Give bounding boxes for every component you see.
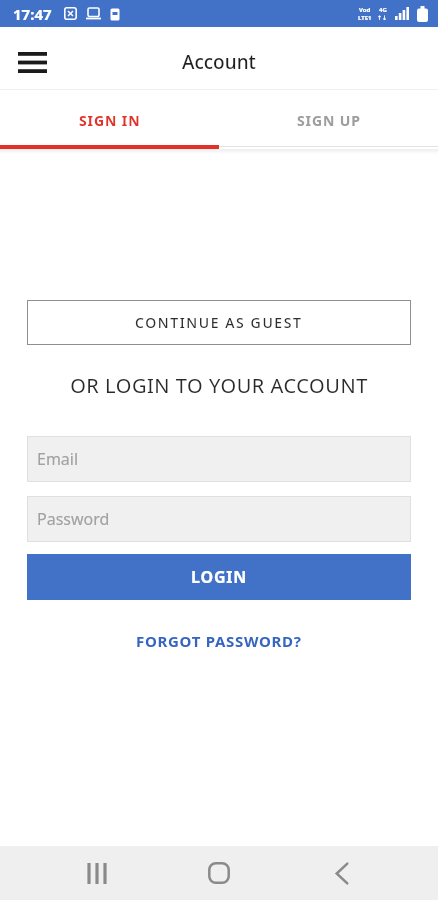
button[interactable] bbox=[9, 39, 55, 85]
button[interactable] bbox=[302, 846, 382, 900]
staticText: SIGN IN bbox=[79, 111, 141, 130]
button[interactable]: Email bbox=[27, 436, 411, 482]
staticText: Email bbox=[37, 448, 79, 470]
staticText: CONTINUE AS GUEST bbox=[135, 313, 303, 332]
staticText: Password bbox=[37, 508, 110, 530]
button[interactable]: CONTINUE AS GUEST bbox=[27, 300, 411, 345]
button[interactable]: LOGIN bbox=[27, 554, 411, 600]
staticText: SIGN UP bbox=[297, 111, 361, 130]
button[interactable] bbox=[179, 846, 259, 900]
staticText: LOGIN bbox=[191, 566, 248, 588]
button[interactable] bbox=[57, 846, 137, 900]
staticText: ↑↓ bbox=[377, 14, 388, 21]
button[interactable]: Password bbox=[27, 496, 411, 542]
button[interactable]: FORGOT PASSWORD? bbox=[128, 623, 310, 659]
staticText: OR LOGIN TO YOUR ACCOUNT bbox=[0, 372, 438, 399]
staticText: Vod bbox=[359, 6, 371, 14]
staticText: Account bbox=[182, 49, 256, 75]
button[interactable]: SIGN UP bbox=[219, 90, 438, 145]
staticText: FORGOT PASSWORD? bbox=[136, 631, 302, 651]
staticText: LTE1 bbox=[358, 14, 372, 22]
staticText: 4G bbox=[379, 6, 387, 14]
staticText: 17:47 bbox=[13, 4, 52, 24]
button[interactable]: SIGN IN bbox=[0, 90, 219, 145]
